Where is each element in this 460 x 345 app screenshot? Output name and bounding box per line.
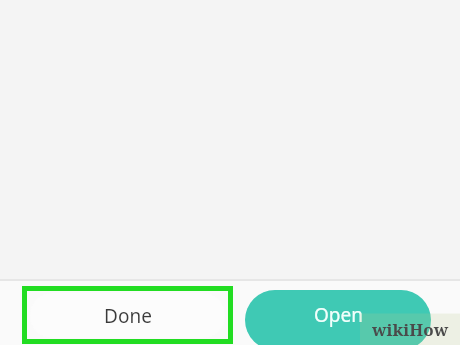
staticText: wikiHow — [372, 318, 449, 340]
staticText: Done — [104, 303, 152, 329]
staticText: Open — [314, 302, 363, 328]
button[interactable]: Done — [30, 293, 225, 338]
button[interactable]: Open — [245, 290, 431, 345]
